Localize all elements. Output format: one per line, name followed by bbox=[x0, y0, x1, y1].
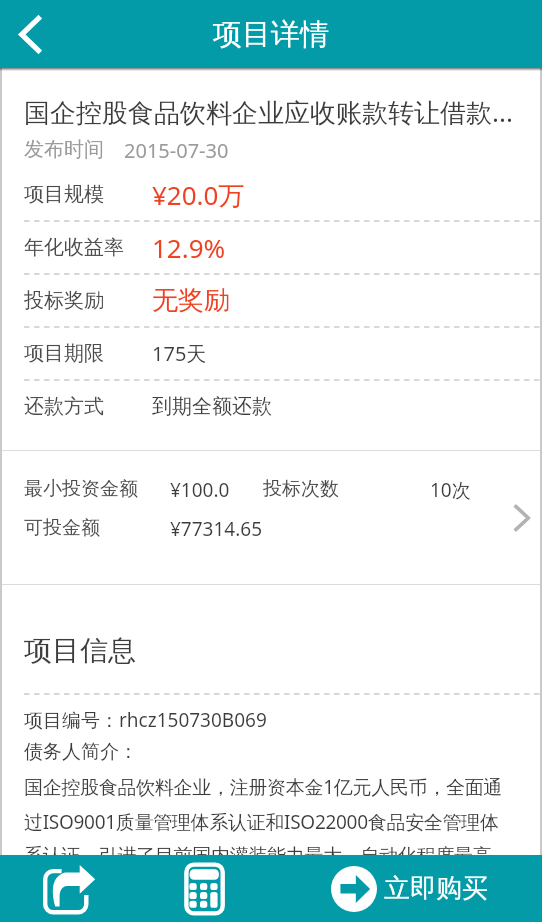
staticText: 可投金额 bbox=[24, 516, 100, 540]
staticText: 到期全额还款 bbox=[152, 394, 272, 419]
staticText: 无奖励 bbox=[152, 284, 230, 317]
staticText: 项目规模 bbox=[24, 182, 104, 207]
staticText: ¥20.0万 bbox=[152, 177, 245, 213]
staticText: 12.9% bbox=[152, 230, 226, 265]
staticText: 项目详情 bbox=[213, 16, 329, 53]
staticText: 投标奖励 bbox=[24, 288, 104, 313]
staticText: 10次 bbox=[430, 477, 471, 503]
button[interactable]: Calculator bbox=[138, 855, 271, 922]
staticText: 175天 bbox=[152, 340, 207, 367]
staticText: 国企控股食品饮料企业，注册资本金1亿元人民币，全面通过ISO9001质量管理体系… bbox=[24, 774, 517, 855]
staticText: ¥77314.65 bbox=[170, 516, 263, 542]
staticText: 还款方式 bbox=[24, 394, 104, 419]
staticText: 项目信息 bbox=[24, 633, 136, 668]
staticText: 债务人简介： bbox=[24, 740, 138, 764]
staticText: 项目编号：rhcz150730B069 bbox=[24, 707, 267, 733]
button[interactable]: 立即购买 bbox=[271, 855, 542, 922]
staticText: 投标次数 bbox=[263, 477, 339, 501]
staticText: 年化收益率 bbox=[24, 235, 124, 260]
staticText: 发布时间 bbox=[24, 137, 104, 162]
staticText: 最小投资金额 bbox=[24, 477, 138, 501]
staticText: 立即购买 bbox=[384, 872, 488, 905]
button[interactable]: 最小投资金额 bbox=[0, 451, 542, 584]
staticText: 2015-07-30 bbox=[124, 137, 229, 164]
staticText: ¥100.0 bbox=[170, 477, 230, 503]
staticText: 国企控股食品饮料企业应收账款转让借款... bbox=[24, 94, 513, 130]
button[interactable]: Share bbox=[0, 855, 138, 922]
staticText: 项目期限 bbox=[24, 341, 104, 366]
button[interactable]: Back bbox=[0, 0, 61, 68]
